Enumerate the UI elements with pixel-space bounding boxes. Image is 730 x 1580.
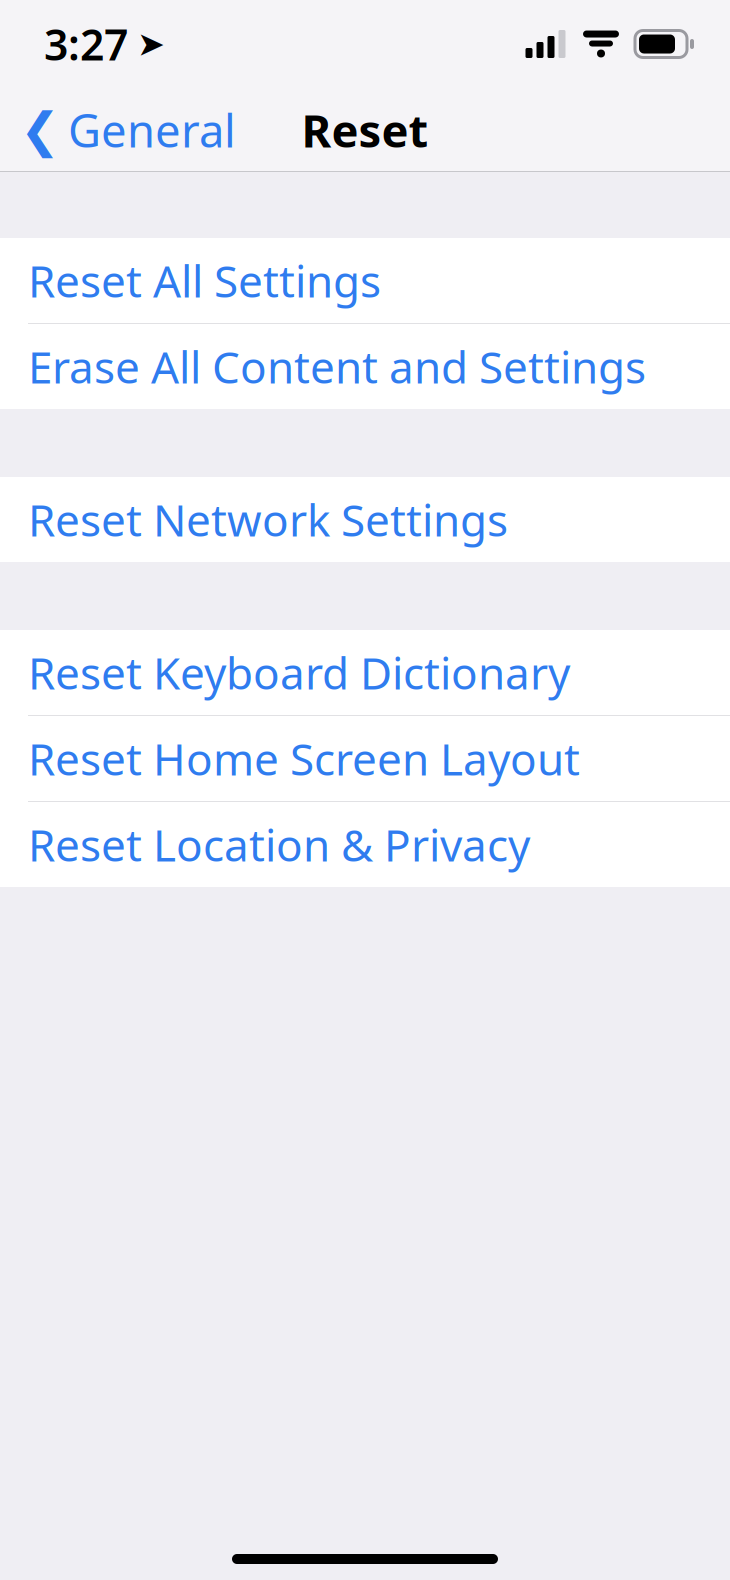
staticText: Erase All Content and Settings xyxy=(28,337,646,396)
button[interactable]: Reset Keyboard Dictionary xyxy=(0,630,730,715)
staticText: Reset Keyboard Dictionary xyxy=(28,643,570,702)
button[interactable]: ❮ xyxy=(0,90,252,170)
staticText: Reset Home Screen Layout xyxy=(28,729,580,788)
button[interactable]: Reset Home Screen Layout xyxy=(0,716,730,801)
button[interactable]: Erase All Content and Settings xyxy=(0,324,730,409)
button[interactable]: Reset All Settings xyxy=(0,238,730,323)
button[interactable]: Reset Location & Privacy xyxy=(0,802,730,887)
button[interactable]: Reset Network Settings xyxy=(0,477,730,562)
staticText: Reset xyxy=(301,100,428,160)
staticText: 3:27 xyxy=(44,16,128,72)
staticText: General xyxy=(68,100,236,160)
staticText: Reset Network Settings xyxy=(28,490,508,549)
staticText: ➤ xyxy=(137,25,165,63)
staticText: ❮ xyxy=(20,103,60,157)
staticText: Reset Location & Privacy xyxy=(28,815,530,874)
staticText: Reset All Settings xyxy=(28,251,381,310)
